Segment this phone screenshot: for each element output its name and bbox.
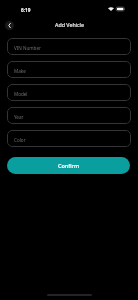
button[interactable]: Confirm [7, 157, 130, 174]
staticText: Model [14, 91, 28, 97]
staticText: Year [14, 114, 24, 120]
staticText: Make [14, 68, 26, 74]
button[interactable]: Year [7, 107, 131, 124]
button[interactable]: VIN Number [7, 38, 131, 55]
staticText: Add Vehicle [55, 21, 84, 28]
button[interactable]: Model [7, 84, 131, 101]
button[interactable]: Color [7, 130, 131, 147]
staticText: Confirm [58, 162, 80, 169]
button[interactable]: Make [7, 61, 131, 78]
staticText: 6:19 [21, 7, 31, 13]
staticText: VIN Number [14, 45, 41, 51]
button[interactable]: Back [5, 21, 14, 30]
staticText: Color [14, 137, 26, 143]
